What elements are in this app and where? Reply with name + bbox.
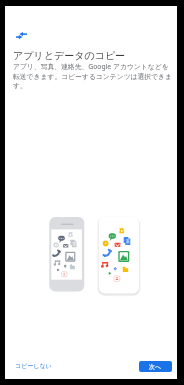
button[interactable]: 次へ	[139, 361, 172, 372]
staticText: 次へ	[149, 363, 162, 371]
staticText: コピーしない	[15, 362, 52, 370]
button[interactable]: コピーしない	[9, 358, 58, 374]
staticText: アプリとデータのコピー	[13, 49, 126, 62]
other: Copy apps and data	[16, 32, 27, 39]
staticText: アプリ、写真、連絡先、Google アカウントなどを転送できます。コピーするコン…	[13, 62, 174, 90]
